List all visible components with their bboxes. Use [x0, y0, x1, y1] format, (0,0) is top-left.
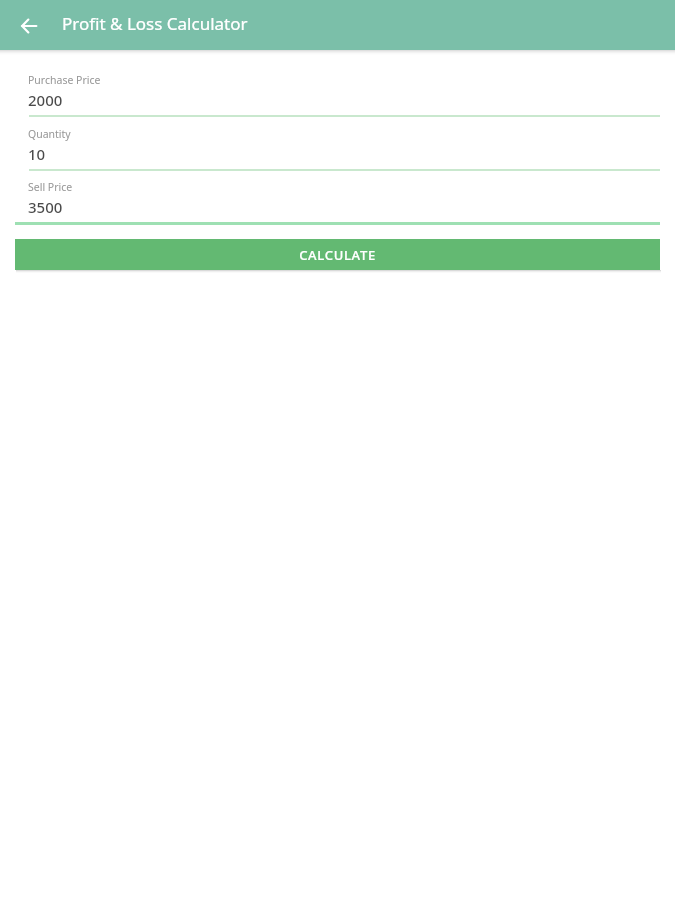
staticText: Profit & Loss Calculator — [62, 12, 248, 35]
button[interactable]: CALCULATE — [15, 239, 660, 270]
button[interactable]: Quantity — [0, 126, 675, 172]
staticText: 10 — [28, 144, 46, 164]
button[interactable]: Back — [10, 7, 47, 44]
staticText: 3500 — [28, 197, 63, 217]
staticText: 2000 — [28, 90, 63, 110]
staticText: CALCULATE — [299, 246, 376, 264]
button[interactable]: Purchase Price — [0, 72, 675, 118]
staticText: Quantity — [28, 127, 71, 141]
staticText: Sell Price — [28, 180, 73, 194]
staticText: Purchase Price — [28, 73, 101, 87]
button[interactable]: Sell Price — [0, 179, 675, 225]
